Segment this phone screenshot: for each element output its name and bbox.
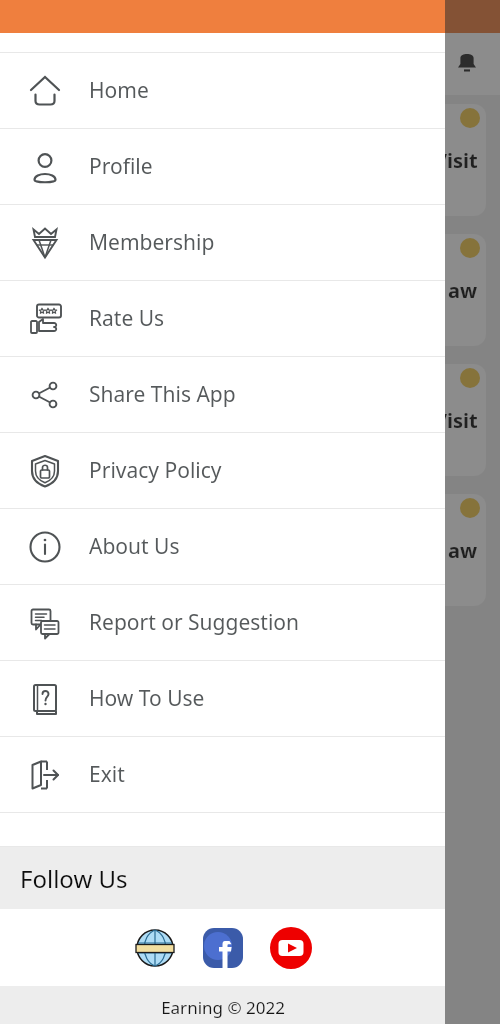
button[interactable]: Facebook xyxy=(201,926,245,970)
staticText: About Us xyxy=(89,532,180,561)
staticText: Report or Suggestion xyxy=(89,608,299,637)
staticText: Earning © 2022 xyxy=(161,996,285,1019)
button[interactable]: How To Use xyxy=(0,661,445,737)
button[interactable]: Exit xyxy=(0,737,445,813)
staticText: Profile xyxy=(89,152,153,181)
button[interactable]: Rate Us xyxy=(0,281,445,357)
button[interactable]: Membership xyxy=(0,205,445,281)
staticText: aw xyxy=(448,277,478,304)
staticText: How To Use xyxy=(89,684,205,713)
button[interactable]: Privacy Policy xyxy=(0,433,445,509)
staticText: Visit xyxy=(434,147,478,174)
staticText: Rate Us xyxy=(89,304,165,333)
staticText: Follow Us xyxy=(20,862,128,895)
button[interactable]: Report or Suggestion xyxy=(0,585,445,661)
button[interactable]: Website xyxy=(133,926,177,970)
staticText: aw xyxy=(448,537,478,564)
staticText: Membership xyxy=(89,228,215,257)
button[interactable]: YouTube xyxy=(269,926,313,970)
button[interactable]: Home xyxy=(0,53,445,129)
button[interactable]: Share This App xyxy=(0,357,445,433)
staticText: Privacy Policy xyxy=(89,456,222,485)
staticText: Share This App xyxy=(89,380,236,409)
button[interactable]: Profile xyxy=(0,129,445,205)
staticText: Exit xyxy=(89,760,125,789)
staticText: Visit xyxy=(434,407,478,434)
button[interactable]: About Us xyxy=(0,509,445,585)
staticText: Home xyxy=(89,76,149,105)
